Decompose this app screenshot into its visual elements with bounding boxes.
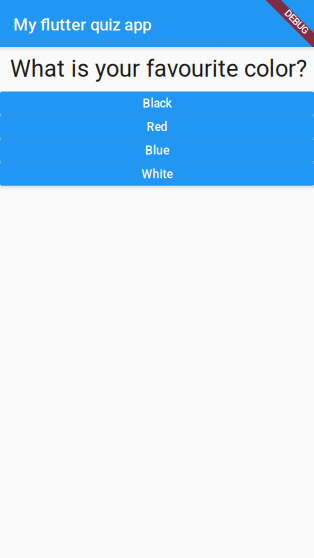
staticText: DEBUG (282, 16, 312, 28)
button[interactable]: Red (0, 115, 314, 139)
staticText: White (141, 167, 172, 181)
button[interactable]: White (0, 162, 314, 186)
button[interactable]: Blue (0, 139, 314, 162)
button[interactable]: Black (0, 91, 314, 115)
staticText: Black (142, 96, 171, 110)
staticText: Red (146, 120, 167, 134)
staticText: Blue (145, 143, 169, 158)
staticText: What is your favourite color? (10, 55, 307, 82)
staticText: My flutter quiz app (13, 15, 151, 34)
